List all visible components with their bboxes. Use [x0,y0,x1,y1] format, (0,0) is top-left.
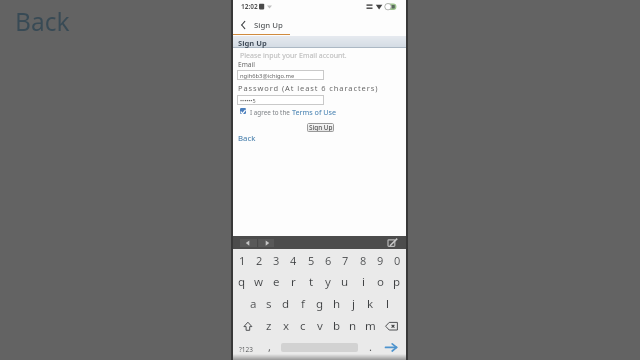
button[interactable]: , [260,335,278,357]
staticText: 8 [360,253,367,268]
button[interactable]: j [344,293,362,315]
button[interactable]: m [361,315,379,337]
staticText: 7 [342,253,349,268]
staticText: h [333,296,341,312]
staticText: q [238,274,246,290]
staticText: g [316,296,324,312]
button[interactable]: f [294,293,312,315]
staticText: k [367,296,374,312]
button[interactable]: c [294,315,312,337]
button[interactable]: l [378,293,396,315]
staticText: 5 [308,253,315,268]
staticText: t [309,274,314,290]
staticText: 1 [239,253,246,268]
button[interactable] [386,238,399,249]
button[interactable]: v [311,315,329,337]
staticText: c [300,318,306,334]
button[interactable]: Sign Up [307,123,334,132]
button[interactable]: t [302,271,320,293]
staticText: v [317,318,323,334]
staticText: Please input your Email account. [240,51,347,61]
staticText: 6 [325,253,332,268]
button[interactable]: . [361,335,379,357]
button[interactable]: s [260,293,278,315]
button[interactable]: 2 [250,249,268,271]
button[interactable]: Back [233,0,251,11]
staticText: j [352,296,355,312]
button[interactable]: ?123 [233,0,247,9]
button[interactable]: y [319,271,337,293]
staticText: n [349,318,357,334]
button[interactable]: 1 [233,249,251,271]
staticText: e [273,274,280,290]
button[interactable]: d [277,293,295,315]
staticText: r [291,274,296,290]
staticText: b [333,318,341,334]
staticText: l [386,296,389,312]
button[interactable]: 6 [319,249,337,271]
button[interactable]: 7 [336,249,354,271]
staticText: Sign Up [254,20,283,31]
button[interactable]: p [388,271,406,293]
button[interactable]: q [233,271,251,293]
staticText: m [365,318,376,334]
button[interactable]: k [361,293,379,315]
button[interactable]: u [336,271,354,293]
button[interactable] [238,315,258,337]
button[interactable]: g [311,293,329,315]
staticText: ••••••5 [240,97,256,104]
staticText: 2 [256,253,263,268]
button[interactable]: i [354,271,372,293]
button[interactable]: 8 [354,249,372,271]
button[interactable]: 0 [388,249,406,271]
button[interactable] [258,239,274,247]
staticText: Email [238,60,255,69]
button[interactable]: h [328,293,346,315]
staticText: , [268,339,271,354]
staticText: i [362,274,365,290]
button[interactable] [381,315,403,337]
staticText: x [283,318,290,334]
button[interactable]: Terms of Use [233,0,277,10]
staticText: . [369,339,372,354]
staticText: 9 [377,253,384,268]
staticText: u [341,274,349,290]
button[interactable]: ••••••5 [237,95,324,105]
staticText: a [250,296,257,312]
staticText: Sign Up [238,38,267,48]
button[interactable]: n [344,315,362,337]
staticText: p [393,274,401,290]
button[interactable]: r [284,271,302,293]
staticText: o [377,274,384,290]
button[interactable] [240,239,258,247]
staticText: Back [15,5,70,38]
staticText: 4 [290,253,297,268]
staticText: 0 [394,253,401,268]
staticText: 3 [273,253,280,268]
staticText: Password (At least 6 characters) [238,83,379,93]
staticText: f [301,296,305,312]
button[interactable]: a [244,293,262,315]
staticText: I agree to the [250,108,290,117]
button[interactable]: 4 [284,249,302,271]
staticText: y [325,274,331,290]
button[interactable]: b [328,315,346,337]
button[interactable]: 3 [267,249,285,271]
button[interactable]: x [277,315,295,337]
staticText: ngih6b3@ichigo.me [240,72,295,80]
staticText: Sign Up [309,123,333,132]
staticText: z [266,318,272,334]
button[interactable] [381,338,403,358]
staticText: d [282,296,290,312]
staticText: w [254,274,264,290]
button[interactable]: e [267,271,285,293]
button[interactable]: w [250,271,268,293]
button[interactable]: z [260,315,278,337]
button[interactable]: o [371,271,389,293]
button[interactable] [240,108,246,114]
button[interactable]: 9 [371,249,389,271]
button[interactable]: ngih6b3@ichigo.me [237,70,324,80]
staticText: 12:02 [241,2,258,11]
button[interactable]: 5 [302,249,320,271]
